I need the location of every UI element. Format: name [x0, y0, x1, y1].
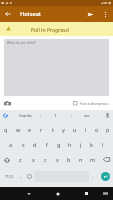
button[interactable]: t [47, 121, 58, 137]
button[interactable]: Voice input [102, 110, 113, 121]
staticText: . [92, 173, 94, 180]
button[interactable]: e [24, 121, 36, 137]
staticText: u [73, 126, 77, 133]
button[interactable]: Shift [0, 152, 14, 167]
button[interactable]: Google [0, 110, 11, 121]
button[interactable]: Recents [80, 187, 93, 200]
staticText: n [79, 156, 83, 163]
staticText: h [68, 141, 72, 148]
button[interactable]: Backspace [99, 152, 113, 167]
staticText: l [102, 141, 104, 148]
staticText: What do you think? [7, 41, 36, 45]
button[interactable]: n [75, 152, 87, 167]
button[interactable]: p [102, 121, 113, 137]
button[interactable]: More options [98, 7, 112, 21]
button[interactable]: b [63, 152, 75, 167]
staticText: , [20, 173, 22, 180]
button[interactable]: g [53, 137, 64, 152]
staticText: y [62, 126, 65, 133]
staticText: I [55, 113, 57, 118]
button[interactable]: x [27, 152, 39, 167]
staticText: w [16, 126, 21, 133]
button[interactable]: ?123 [0, 167, 17, 185]
staticText: o [95, 126, 99, 133]
staticText: t [52, 126, 54, 133]
staticText: m [90, 156, 96, 163]
button[interactable]: , [17, 167, 25, 185]
staticText: b [67, 156, 71, 163]
staticText: Post as Anonymous [80, 102, 109, 106]
staticText: x [32, 156, 35, 163]
button[interactable]: Emoji [25, 167, 34, 185]
staticText: thanks [19, 113, 32, 118]
staticText: e [28, 126, 32, 133]
staticText: we [84, 113, 90, 118]
button[interactable]: j [75, 137, 86, 152]
button[interactable]: a [5, 137, 17, 152]
button[interactable]: Post as Anonymous [73, 101, 109, 106]
button[interactable]: Enter [97, 167, 113, 185]
button[interactable]: w [12, 121, 24, 137]
button[interactable]: Back [22, 187, 35, 200]
button[interactable]: o [91, 121, 102, 137]
staticText: c [44, 156, 47, 163]
staticText: i [85, 126, 87, 133]
button[interactable]: What do you think? [4, 39, 109, 96]
button[interactable]: f [41, 137, 53, 152]
button[interactable]: m [87, 152, 99, 167]
staticText: Poll in Progress! [31, 27, 70, 34]
staticText: p [106, 126, 110, 133]
button[interactable]: u [69, 121, 80, 137]
button[interactable]: l [97, 137, 108, 152]
button[interactable]: y [58, 121, 69, 137]
staticText: g [57, 141, 61, 148]
staticText: f [46, 141, 48, 148]
button[interactable]: v [51, 152, 63, 167]
staticText: k [90, 141, 93, 148]
button[interactable]: . [89, 167, 97, 185]
button[interactable]: s [17, 137, 29, 152]
button[interactable]: Send [82, 6, 98, 22]
button[interactable]: k [86, 137, 97, 152]
button[interactable]: d [29, 137, 41, 152]
staticText: s [22, 141, 25, 148]
button[interactable]: q [0, 121, 12, 137]
button[interactable]: c [39, 152, 51, 167]
staticText: v [56, 156, 59, 163]
staticText: a [9, 141, 13, 148]
button[interactable]: h [64, 137, 75, 152]
button[interactable]: Back [0, 6, 16, 22]
button[interactable]: Home [51, 187, 64, 200]
button[interactable]: z [14, 152, 27, 167]
staticText: Hotseat [20, 10, 42, 18]
button[interactable]: Add photo [0, 96, 14, 110]
staticText: r [40, 126, 43, 133]
button[interactable]: r [36, 121, 47, 137]
staticText: z [19, 156, 22, 163]
staticText: d [33, 141, 37, 148]
button[interactable]: I [41, 110, 71, 121]
staticText: j [80, 141, 82, 148]
button[interactable]: thanks [11, 110, 40, 121]
button[interactable]: i [80, 121, 91, 137]
staticText: q [4, 126, 8, 133]
staticText: ?123 [5, 174, 13, 179]
button[interactable]: we [72, 110, 102, 121]
button[interactable]: Switch keyboard [99, 187, 112, 200]
